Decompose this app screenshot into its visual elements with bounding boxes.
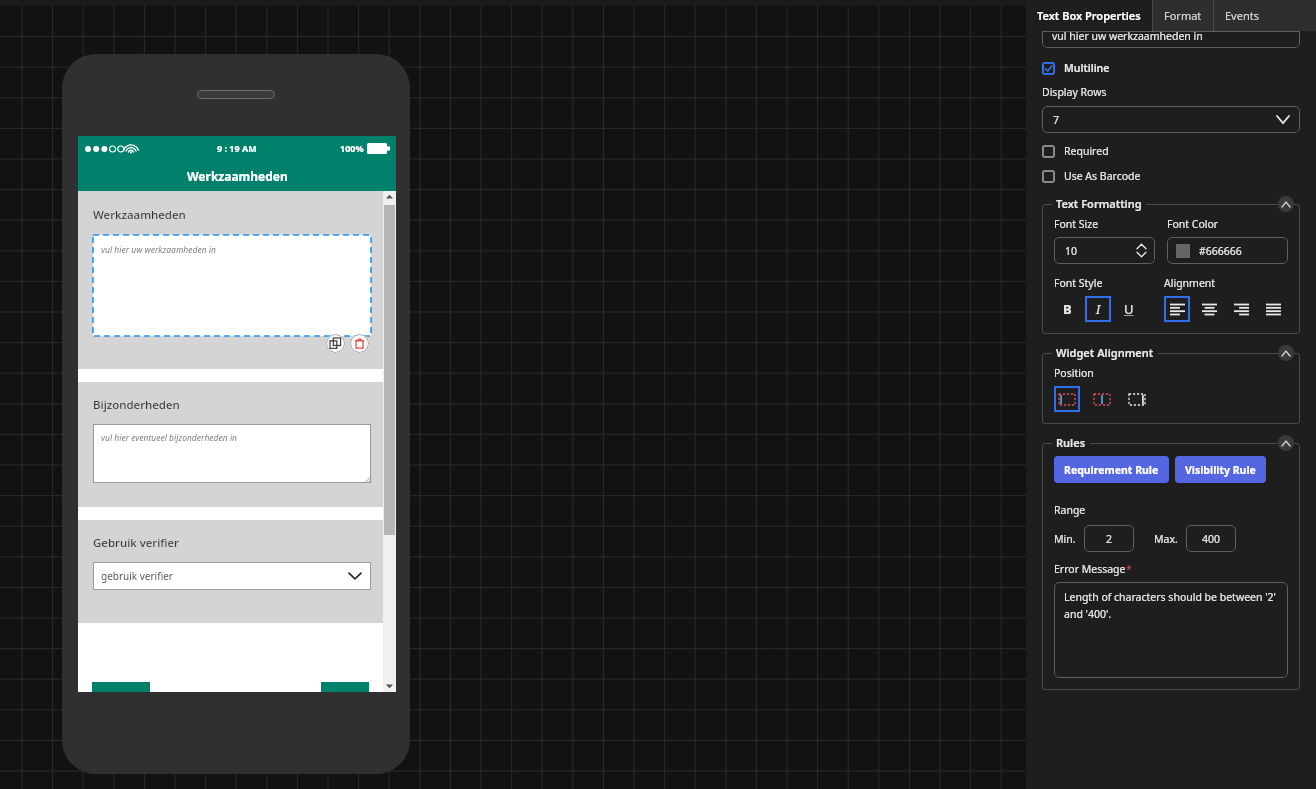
staticText: B [1063,300,1072,318]
staticText: * [1126,562,1132,576]
button[interactable]: 7 [1042,106,1300,133]
staticText: #666666 [1199,244,1242,258]
button[interactable]: #666666 [1167,237,1288,264]
button[interactable]: Alignment option 2 [1228,296,1254,322]
staticText: Gebruik verifier [93,535,179,551]
staticText: Error Message [1054,562,1126,576]
button[interactable]: B [1054,296,1080,322]
staticText: Use As Barcode [1064,169,1141,183]
staticText: Length of characters should be between '… [1064,590,1278,621]
staticText: U [1124,300,1134,318]
staticText: Required [1064,144,1109,158]
staticText: Rules [1056,435,1086,450]
staticText: 10 [1065,244,1078,258]
button[interactable]: gebruik verifier [93,562,371,590]
button[interactable]: U [1116,296,1142,322]
staticText: 2 [1106,532,1113,546]
button[interactable]: Events [1214,0,1270,31]
button[interactable]: Visibility Rule [1175,456,1266,483]
staticText: Text Box Properties [1037,8,1141,23]
staticText: Werkzaamheden [187,168,288,184]
button[interactable]: Multiline [1042,61,1110,75]
staticText: 7 [1053,113,1060,127]
staticText: Widget Alignment [1056,345,1154,360]
button[interactable]: Duplicate [326,334,345,353]
button[interactable]: Collapse Widget Alignment [1278,345,1294,361]
button[interactable]: 400 [1186,525,1236,552]
staticText: Font Style [1054,276,1103,290]
button[interactable]: Collapse Rules [1278,435,1294,451]
staticText: Range [1054,503,1086,517]
staticText: I [1096,300,1101,318]
staticText: gebruik verifier [101,569,173,583]
staticText: Format [1164,8,1202,23]
button[interactable]: Text Box Properties [1026,0,1152,31]
staticText: vul hier eventueel bijzonderheden in [101,432,237,444]
button[interactable]: Delete [350,334,369,353]
button[interactable]: 2 [1084,525,1134,552]
button[interactable]: Alignment option 3 [1260,296,1286,322]
staticText: Min. [1054,532,1076,546]
button[interactable]: Position option 1 [1089,386,1115,412]
staticText: Font Color [1167,217,1219,231]
staticText: Text Formatting [1056,196,1142,211]
button[interactable]: Bijzonderheden [78,382,383,507]
button[interactable]: Alignment option 0 [1164,296,1190,322]
button[interactable]: Position option 2 [1124,386,1150,412]
button[interactable]: Format [1153,0,1213,31]
staticText: vul hier uw werkzaamheden in [1052,31,1203,43]
staticText: Bijzonderheden [93,397,180,413]
staticText: Events [1225,8,1259,23]
staticText: Multiline [1064,61,1110,75]
button[interactable]: I [1085,296,1111,322]
button[interactable]: 10 [1054,237,1155,264]
staticText: Requirement Rule [1064,463,1159,477]
button[interactable]: Required [1042,144,1109,158]
staticText: 9 : 19 AM [217,142,257,154]
button[interactable]: Gebruik verifier [78,520,383,623]
staticText: Display Rows [1042,85,1107,99]
button[interactable]: Length of characters should be between '… [1054,582,1288,678]
button[interactable]: Position option 0 [1054,386,1080,412]
staticText: Font Size [1054,217,1099,231]
button[interactable]: vul hier uw werkzaamheden in [1042,31,1300,48]
staticText: Alignment [1164,276,1216,290]
staticText: 100% [340,142,364,154]
staticText: Werkzaamheden [93,207,186,223]
button[interactable]: Collapse Text Formatting [1278,196,1294,212]
button[interactable]: Werkzaamheden [78,191,383,369]
staticText: Position [1054,366,1094,380]
staticText: vul hier uw werkzaamheden in [101,244,216,256]
staticText: 400 [1202,532,1221,546]
staticText: Visibility Rule [1185,463,1256,477]
button[interactable]: Use As Barcode [1042,169,1141,183]
button[interactable]: Requirement Rule [1054,456,1169,483]
staticText: Max. [1154,532,1178,546]
button[interactable]: Alignment option 1 [1196,296,1222,322]
